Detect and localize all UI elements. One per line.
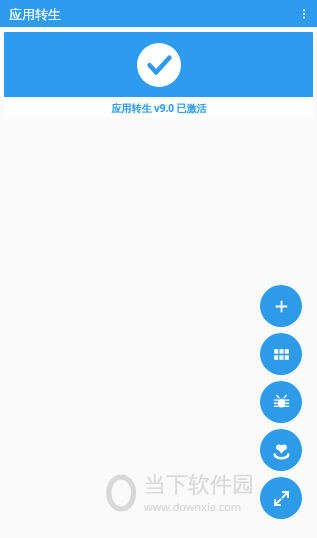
button[interactable]: Donate [260,429,302,471]
staticText: 当下软件园 [144,471,254,499]
staticText: 应用转生 [9,6,61,22]
button[interactable]: Add [260,285,302,327]
button[interactable]: Expand [260,477,302,519]
button[interactable]: More options [290,0,317,27]
staticText: 应用转生 v9.0 已激活 [111,101,207,115]
button[interactable]: 应用转生 v9.0 已激活 [4,32,313,119]
button[interactable]: Debug [260,381,302,423]
button[interactable]: App list [260,333,302,375]
staticText: www.downxia.com [144,499,242,514]
